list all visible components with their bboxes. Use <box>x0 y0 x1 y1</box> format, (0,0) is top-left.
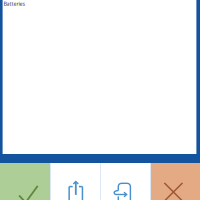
button[interactable]: Exit <box>100 163 150 200</box>
button[interactable]: Cancel <box>150 163 200 200</box>
button[interactable]: Share <box>50 163 100 200</box>
staticText: Batteries <box>3 0 25 7</box>
button[interactable]: Confirm <box>0 163 50 200</box>
